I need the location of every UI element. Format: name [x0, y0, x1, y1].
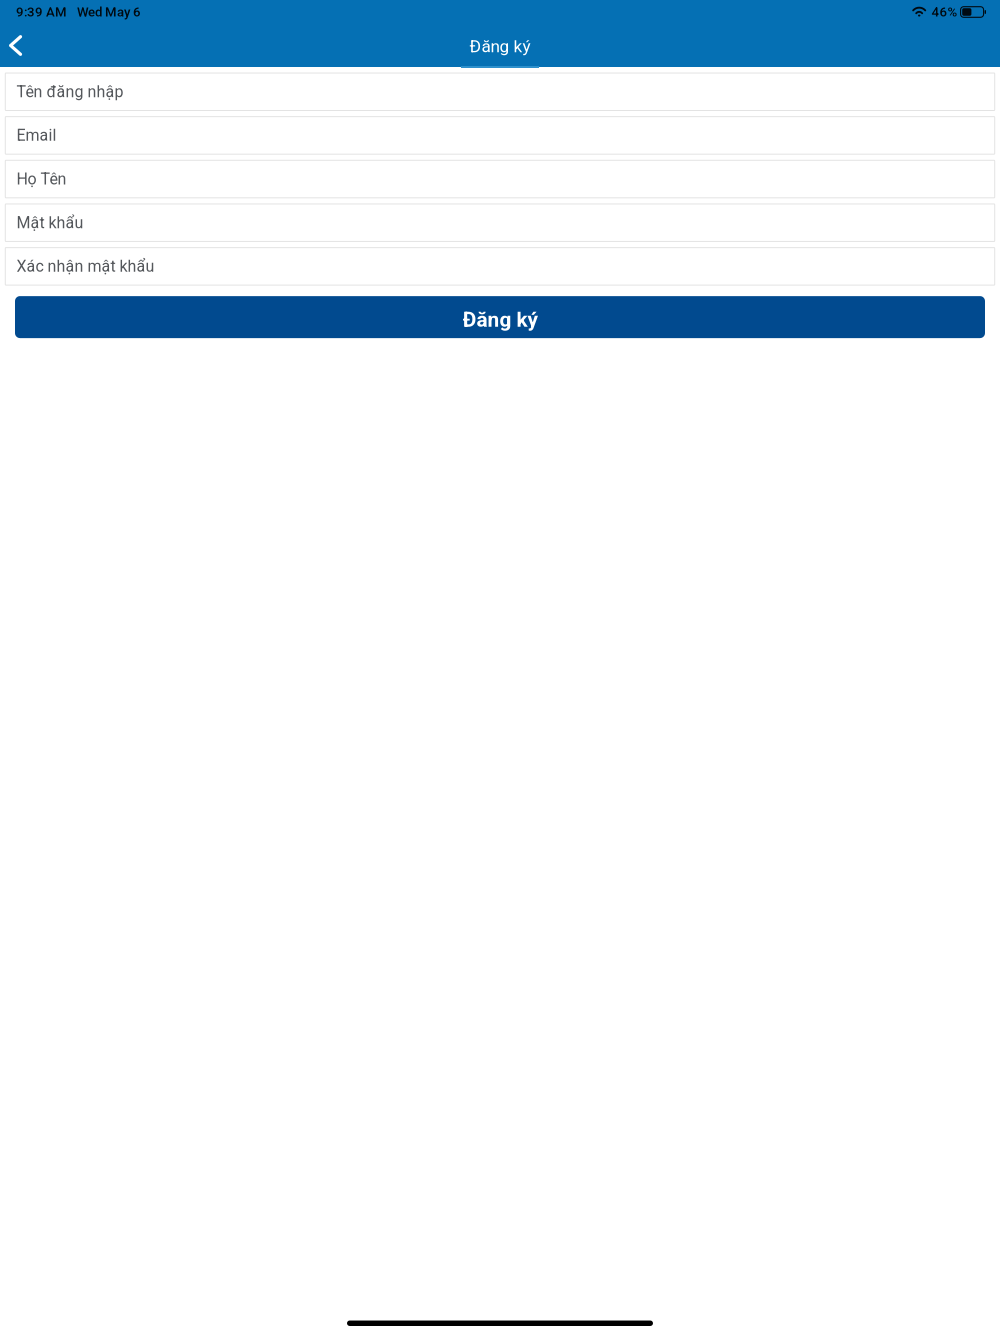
- button[interactable]: Xác nhận mật khẩu: [5, 248, 995, 285]
- staticText: Đăng ký: [469, 36, 530, 56]
- button[interactable]: Mật khẩu: [5, 204, 995, 241]
- staticText: 9:39 AM: [16, 4, 67, 20]
- staticText: Đăng ký: [462, 307, 537, 332]
- staticText: Wed May 6: [77, 4, 141, 20]
- staticText: 46%: [931, 4, 957, 20]
- button[interactable]: Back: [0, 24, 36, 67]
- staticText: Họ Tên: [17, 170, 67, 188]
- staticText: Xác nhận mật khẩu: [17, 257, 155, 276]
- staticText: Tên đăng nhập: [17, 82, 124, 101]
- staticText: Mật khẩu: [17, 213, 84, 232]
- staticText: Email: [17, 126, 57, 145]
- button[interactable]: Đăng ký: [15, 296, 985, 338]
- button[interactable]: Họ Tên: [5, 160, 995, 198]
- button[interactable]: Email: [5, 117, 995, 154]
- button[interactable]: Tên đăng nhập: [5, 73, 995, 110]
